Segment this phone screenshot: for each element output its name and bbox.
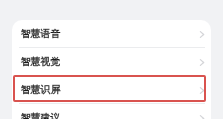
staticText: 智慧视觉: [21, 56, 61, 68]
staticText: 智慧识屏: [21, 84, 61, 96]
staticText: 智慧建议: [21, 112, 61, 119]
other: 打开 智慧建议: [197, 113, 207, 119]
staticText: 智慧识屏: [21, 84, 61, 96]
staticText: 智慧视觉: [21, 56, 61, 68]
staticText: 智慧语音: [21, 28, 61, 40]
other: 打开 智慧识屏: [197, 85, 207, 95]
other: 打开 智慧视觉: [197, 57, 207, 67]
staticText: 智慧建议: [21, 112, 61, 119]
button[interactable]: 智慧识屏: [12, 76, 211, 104]
button[interactable]: 智慧视觉: [12, 48, 211, 76]
other: 打开 智慧语音: [197, 29, 207, 39]
button[interactable]: 智慧建议: [12, 104, 211, 119]
button[interactable]: 智慧语音: [12, 20, 211, 48]
staticText: 智慧语音: [21, 28, 61, 40]
